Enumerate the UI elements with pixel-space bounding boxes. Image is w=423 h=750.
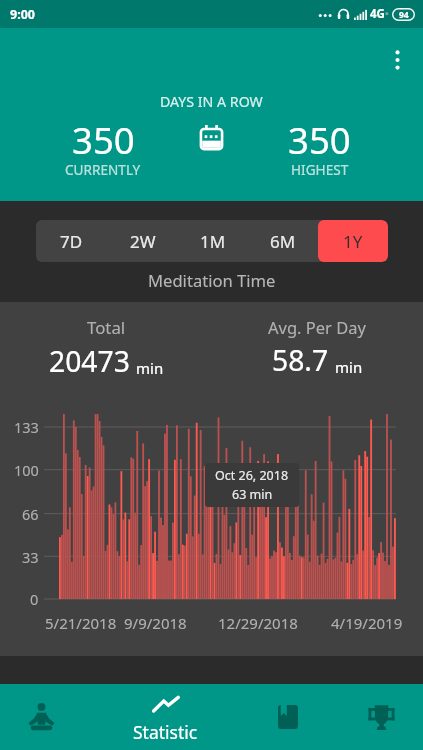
staticText: Total — [87, 316, 126, 339]
staticText: 66 — [22, 504, 39, 524]
button[interactable]: Journal — [249, 684, 327, 750]
staticText: 133 — [14, 417, 39, 437]
staticText: 12/29/2018 — [218, 613, 298, 633]
staticText: min — [335, 357, 363, 377]
staticText: 2W — [130, 230, 156, 253]
staticText: 9:00 — [10, 6, 35, 23]
staticText: 350 — [72, 115, 135, 165]
staticText: 4/19/2019 — [331, 613, 403, 633]
button[interactable]: More options — [377, 40, 417, 80]
button[interactable]: Meditate — [0, 684, 82, 750]
staticText: 94 — [399, 9, 409, 21]
staticText: Statistic — [133, 720, 198, 744]
button[interactable]: 2W — [107, 220, 178, 262]
staticText: DAYS IN A ROW — [160, 92, 263, 111]
staticText: 350 — [288, 115, 351, 165]
button[interactable]: 1Y — [318, 220, 388, 262]
staticText: 20473 — [49, 342, 130, 381]
staticText: 9/9/2018 — [124, 613, 187, 633]
staticText: 6M — [270, 230, 296, 253]
staticText: min — [136, 358, 164, 378]
staticText: 100 — [14, 460, 39, 480]
staticText: 5/21/2018 — [45, 613, 117, 633]
button[interactable]: 6M — [248, 220, 318, 262]
staticText: 0 — [30, 589, 39, 609]
staticText: 58.7 — [272, 341, 329, 380]
button[interactable]: Achievements — [333, 684, 423, 750]
staticText: Oct 26, 2018 — [215, 467, 289, 484]
staticText: Meditation Time — [148, 269, 276, 292]
staticText: 33 — [22, 547, 39, 567]
staticText: Avg. Per Day — [268, 316, 366, 338]
button[interactable]: 1M — [178, 220, 248, 262]
staticText: 1Y — [343, 230, 363, 253]
button[interactable]: 7D — [36, 220, 107, 262]
staticText: HIGHEST — [291, 160, 349, 179]
staticText: 4G — [370, 6, 385, 22]
staticText: 7D — [60, 230, 83, 253]
staticText: 63 min — [232, 486, 273, 503]
staticText: CURRENTLY — [65, 160, 141, 179]
button[interactable]: Statistic — [82, 687, 249, 750]
staticText: 1M — [200, 230, 226, 253]
